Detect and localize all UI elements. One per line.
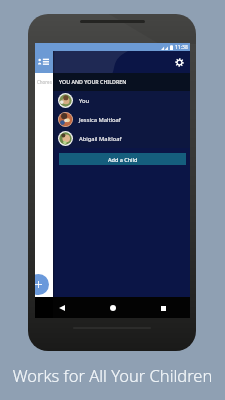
button[interactable]: You bbox=[35, 91, 190, 110]
button[interactable]: Settings bbox=[173, 56, 185, 68]
staticText: Chores bbox=[37, 79, 52, 85]
button[interactable]: Add bbox=[35, 274, 49, 295]
staticText: Abigail Maltloaf bbox=[79, 135, 122, 143]
button[interactable]: Home bbox=[108, 303, 118, 313]
staticText: Jessica Maltloaf bbox=[79, 116, 121, 124]
button[interactable]: Add a Child bbox=[59, 153, 186, 165]
button[interactable]: Recents bbox=[158, 303, 168, 313]
staticText: Add a Child bbox=[108, 156, 138, 163]
staticText: 11:38 bbox=[175, 44, 188, 51]
staticText: Works for All Your Children bbox=[0, 364, 225, 386]
staticText: YOU AND YOUR CHILDREN bbox=[59, 78, 127, 85]
button[interactable]: Jessica Maltloaf bbox=[35, 110, 190, 129]
staticText: You bbox=[79, 97, 90, 105]
button[interactable]: Abigail Maltloaf bbox=[35, 129, 190, 148]
button[interactable]: Back bbox=[57, 303, 67, 313]
